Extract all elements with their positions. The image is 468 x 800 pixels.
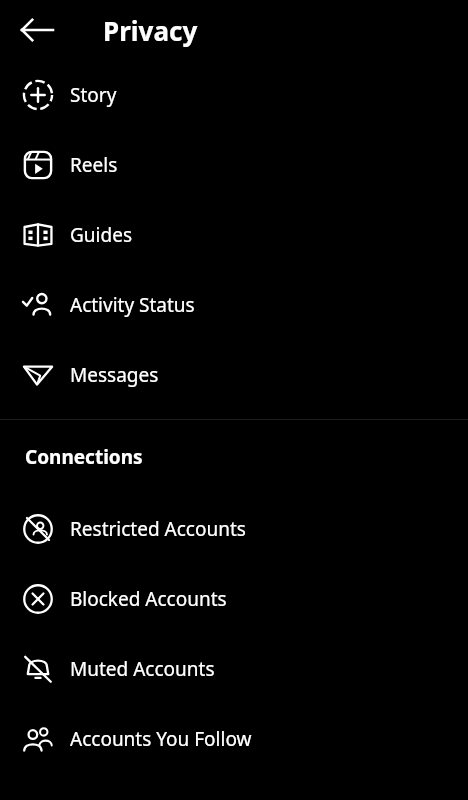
staticText: Privacy: [103, 13, 198, 48]
button[interactable]: Story: [0, 60, 468, 130]
button[interactable]: Messages: [0, 340, 468, 410]
staticText: Activity Status: [70, 292, 195, 318]
button[interactable]: Activity Status: [0, 270, 468, 340]
button[interactable]: Muted Accounts: [0, 634, 468, 704]
button[interactable]: Guides: [0, 200, 468, 270]
staticText: Accounts You Follow: [70, 726, 252, 752]
button[interactable]: Accounts You Follow: [0, 704, 468, 774]
staticText: Guides: [70, 222, 132, 248]
staticText: Muted Accounts: [70, 656, 215, 682]
button[interactable]: Reels: [0, 130, 468, 200]
staticText: Blocked Accounts: [70, 586, 227, 612]
button[interactable]: Blocked Accounts: [0, 564, 468, 634]
staticText: Messages: [70, 362, 159, 388]
staticText: Reels: [70, 152, 118, 178]
button[interactable]: Back: [14, 7, 60, 53]
staticText: Story: [70, 82, 117, 108]
staticText: Connections: [25, 444, 143, 470]
button[interactable]: Restricted Accounts: [0, 494, 468, 564]
staticText: Restricted Accounts: [70, 516, 246, 542]
